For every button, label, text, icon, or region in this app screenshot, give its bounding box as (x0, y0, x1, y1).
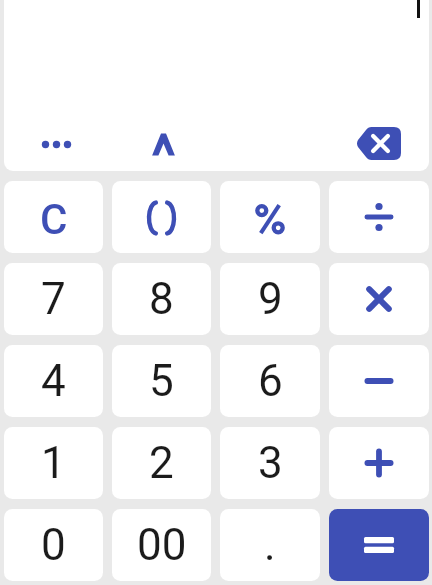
button[interactable]: 00 (112, 509, 211, 581)
button[interactable] (350, 120, 408, 167)
staticText: C (40, 195, 68, 244)
button[interactable] (145, 124, 182, 164)
button[interactable]: C (4, 181, 103, 253)
button[interactable] (329, 345, 429, 417)
staticText: . (264, 519, 276, 571)
button[interactable] (329, 509, 429, 581)
button[interactable] (112, 181, 211, 253)
button[interactable]: 5 (112, 345, 211, 417)
button[interactable] (329, 427, 429, 499)
staticText: 0 (41, 519, 66, 571)
staticText: 3 (258, 437, 283, 489)
staticText: 6 (258, 355, 283, 407)
staticText: 8 (149, 273, 174, 325)
button[interactable]: 9 (220, 263, 320, 335)
button[interactable]: 8 (112, 263, 211, 335)
button[interactable] (220, 181, 320, 253)
staticText: 5 (149, 355, 174, 407)
button[interactable]: 7 (4, 263, 103, 335)
button[interactable]: . (220, 509, 320, 581)
button[interactable]: 4 (4, 345, 103, 417)
staticText: 2 (149, 437, 174, 489)
button[interactable]: 6 (220, 345, 320, 417)
button[interactable] (28, 127, 86, 162)
button[interactable] (329, 263, 429, 335)
button[interactable]: 2 (112, 427, 211, 499)
staticText: 9 (258, 273, 283, 325)
staticText: 1 (41, 437, 66, 489)
button[interactable]: 0 (4, 509, 103, 581)
staticText: 00 (137, 519, 187, 571)
button[interactable]: 3 (220, 427, 320, 499)
staticText: 7 (41, 273, 66, 325)
button[interactable] (329, 181, 429, 253)
staticText: 4 (41, 355, 66, 407)
button[interactable]: 1 (4, 427, 103, 499)
